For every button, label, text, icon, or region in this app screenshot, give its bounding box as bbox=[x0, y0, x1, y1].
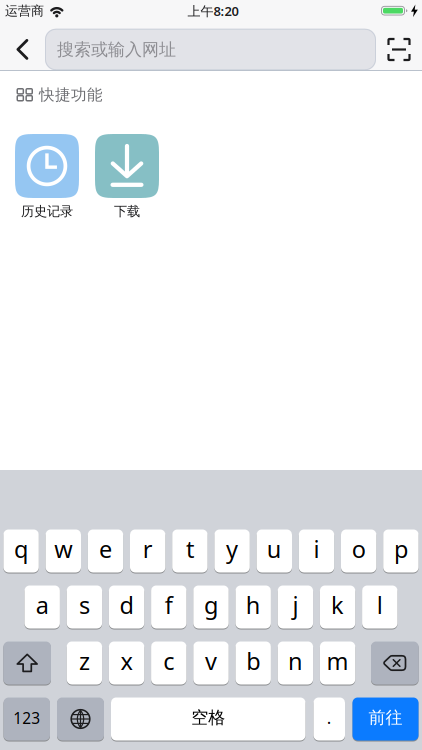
staticText: i bbox=[313, 533, 319, 565]
button[interactable]: f bbox=[151, 585, 186, 629]
staticText: z bbox=[79, 645, 90, 677]
button[interactable]: w bbox=[46, 529, 81, 573]
button[interactable]: 空格 bbox=[111, 697, 305, 741]
button[interactable]: c bbox=[151, 641, 186, 685]
staticText: q bbox=[14, 533, 28, 565]
staticText: m bbox=[327, 645, 349, 677]
staticText: t bbox=[186, 533, 194, 565]
button[interactable]: 123 bbox=[3, 697, 50, 741]
button[interactable]: z bbox=[67, 641, 102, 685]
button[interactable]: v bbox=[193, 641, 229, 685]
staticText: f bbox=[165, 589, 173, 621]
button[interactable] bbox=[371, 641, 419, 685]
button[interactable]: g bbox=[193, 585, 229, 629]
staticText: n bbox=[288, 645, 303, 677]
button[interactable] bbox=[57, 697, 104, 741]
staticText: d bbox=[120, 589, 134, 621]
button[interactable]: k bbox=[320, 585, 355, 629]
button[interactable]: . bbox=[313, 697, 345, 741]
staticText: x bbox=[121, 645, 133, 677]
staticText: 空格 bbox=[191, 707, 225, 728]
button[interactable]: b bbox=[235, 641, 271, 685]
button[interactable]: 下载 bbox=[95, 134, 159, 220]
button[interactable]: a bbox=[24, 585, 60, 629]
staticText: 搜索或输入网址 bbox=[57, 39, 176, 60]
staticText: b bbox=[246, 645, 260, 677]
button[interactable]: s bbox=[67, 585, 102, 629]
staticText: e bbox=[99, 533, 112, 565]
button[interactable]: u bbox=[257, 529, 292, 573]
button[interactable]: t bbox=[172, 529, 208, 573]
button[interactable]: l bbox=[362, 585, 397, 629]
staticText: u bbox=[267, 533, 282, 565]
button[interactable]: 前往 bbox=[352, 697, 418, 741]
button[interactable]: m bbox=[320, 641, 355, 685]
staticText: 历史记录 bbox=[21, 203, 73, 220]
staticText: p bbox=[394, 533, 408, 565]
button[interactable]: e bbox=[88, 529, 123, 573]
staticText: 快捷功能 bbox=[39, 85, 103, 104]
staticText: l bbox=[377, 589, 383, 621]
button[interactable]: o bbox=[341, 529, 376, 573]
button[interactable]: n bbox=[278, 641, 313, 685]
button[interactable]: y bbox=[214, 529, 250, 573]
button[interactable]: p bbox=[383, 529, 419, 573]
button[interactable]: j bbox=[278, 585, 313, 629]
button[interactable] bbox=[3, 641, 51, 685]
staticText: s bbox=[79, 589, 90, 621]
staticText: h bbox=[246, 589, 261, 621]
staticText: w bbox=[54, 533, 72, 565]
staticText: r bbox=[143, 533, 153, 565]
staticText: 上午8:20 bbox=[187, 2, 238, 20]
staticText: . bbox=[327, 706, 332, 729]
button[interactable] bbox=[0, 25, 45, 73]
staticText: v bbox=[205, 645, 217, 677]
button[interactable]: q bbox=[3, 529, 39, 573]
button[interactable]: h bbox=[235, 585, 271, 629]
staticText: 下载 bbox=[114, 203, 140, 220]
staticText: g bbox=[204, 589, 218, 621]
staticText: c bbox=[163, 645, 174, 677]
staticText: j bbox=[292, 589, 298, 621]
staticText: k bbox=[331, 589, 344, 621]
button[interactable]: 历史记录 bbox=[15, 134, 79, 220]
button[interactable]: x bbox=[109, 641, 144, 685]
button[interactable]: r bbox=[130, 529, 165, 573]
staticText: y bbox=[226, 533, 238, 565]
button[interactable] bbox=[376, 25, 422, 73]
staticText: o bbox=[352, 533, 366, 565]
staticText: a bbox=[36, 589, 49, 621]
button[interactable]: i bbox=[299, 529, 334, 573]
button[interactable]: d bbox=[109, 585, 144, 629]
button[interactable]: 搜索或输入网址 bbox=[45, 29, 376, 70]
staticText: 运营商 bbox=[5, 3, 44, 19]
staticText: 123 bbox=[13, 707, 40, 728]
staticText: 前往 bbox=[368, 707, 402, 728]
